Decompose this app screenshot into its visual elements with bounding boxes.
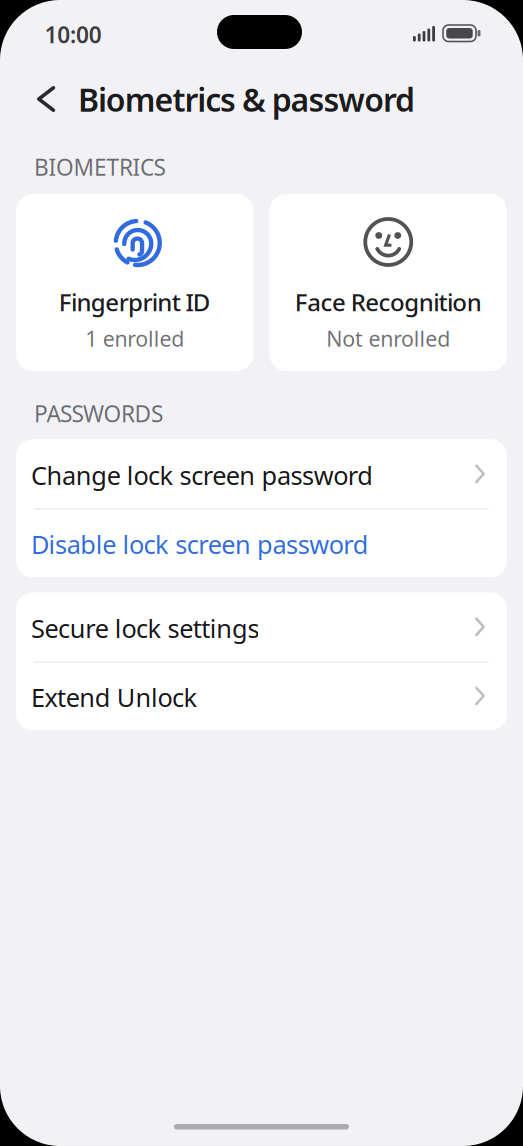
staticText: Not enrolled xyxy=(326,324,450,353)
button[interactable]: Change lock screen password xyxy=(16,439,507,508)
staticText: 1 enrolled xyxy=(85,324,184,353)
staticText: Change lock screen password xyxy=(31,458,373,492)
staticText: Face Recognition xyxy=(295,286,482,318)
staticText: 10:00 xyxy=(44,19,102,50)
button[interactable]: Face Recognition xyxy=(269,194,507,371)
button[interactable]: Secure lock settings xyxy=(16,592,507,661)
staticText: PASSWORDS xyxy=(34,398,163,429)
button[interactable]: Fingerprint ID xyxy=(16,194,253,371)
button[interactable] xyxy=(37,86,55,112)
staticText: Biometrics & password xyxy=(78,78,415,120)
staticText: Fingerprint ID xyxy=(59,286,211,318)
staticText: Disable lock screen password xyxy=(31,527,369,561)
button[interactable]: Extend Unlock xyxy=(16,661,507,730)
staticText: Secure lock settings xyxy=(31,611,259,645)
staticText: Extend Unlock xyxy=(31,680,198,714)
button[interactable]: Disable lock screen password xyxy=(16,508,507,577)
staticText: BIOMETRICS xyxy=(34,152,165,182)
